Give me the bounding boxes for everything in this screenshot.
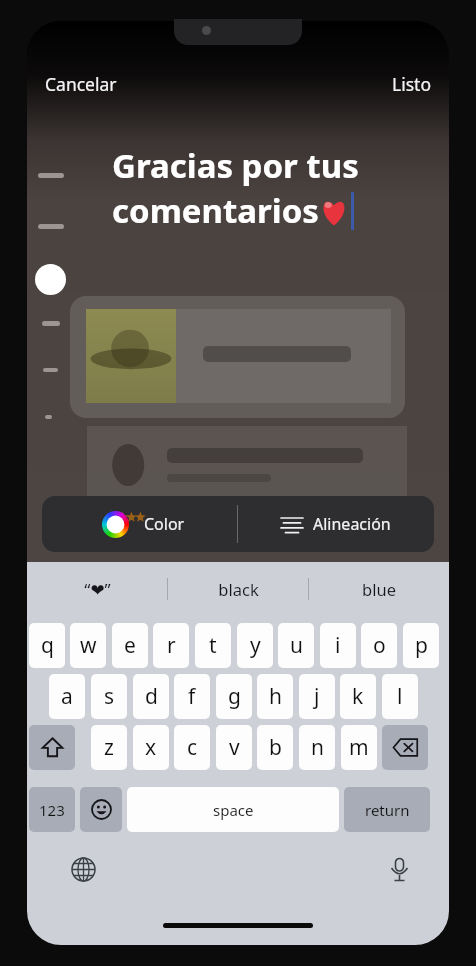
- button[interactable]: black: [168, 562, 308, 616]
- staticText: 123: [39, 800, 65, 820]
- staticText: black: [218, 578, 259, 600]
- staticText: f: [188, 682, 196, 711]
- button[interactable]: h: [257, 674, 293, 719]
- staticText: i: [335, 631, 341, 660]
- button[interactable]: o: [361, 623, 397, 668]
- staticText: Alineación: [313, 513, 391, 535]
- staticText: w: [80, 631, 97, 660]
- button[interactable]: s: [91, 674, 127, 719]
- staticText: j: [314, 682, 320, 711]
- staticText: r: [167, 631, 176, 660]
- button[interactable]: j: [299, 674, 335, 719]
- button[interactable]: Gracias por tus: [112, 143, 442, 233]
- button[interactable]: v: [216, 725, 252, 770]
- button[interactable]: blue: [309, 562, 449, 616]
- staticText: p: [415, 631, 428, 660]
- staticText: Cancelar: [45, 72, 117, 96]
- button[interactable]: Emoji: [80, 787, 122, 832]
- staticText: k: [352, 682, 364, 711]
- staticText: n: [311, 733, 324, 762]
- staticText: h: [269, 682, 282, 711]
- staticText: u: [290, 631, 303, 660]
- staticText: y: [250, 631, 261, 660]
- button[interactable]: c: [174, 725, 210, 770]
- button[interactable]: r: [153, 623, 189, 668]
- staticText: c: [187, 733, 198, 762]
- staticText: return: [365, 800, 410, 820]
- staticText: b: [269, 733, 282, 762]
- staticText: o: [373, 631, 386, 660]
- button[interactable]: z: [91, 725, 127, 770]
- button[interactable]: Text size: [35, 264, 66, 295]
- button[interactable]: x: [133, 725, 169, 770]
- staticText: q: [41, 631, 54, 660]
- button[interactable]: w: [70, 623, 106, 668]
- staticText: comentarios: [112, 188, 319, 233]
- staticText: space: [213, 800, 254, 820]
- button[interactable]: Backspace: [382, 725, 428, 770]
- staticText: v: [229, 733, 240, 762]
- button[interactable]: e: [112, 623, 148, 668]
- staticText: x: [145, 733, 157, 762]
- button[interactable]: k: [340, 674, 376, 719]
- staticText: l: [397, 682, 403, 711]
- button[interactable]: p: [403, 623, 439, 668]
- button[interactable]: b: [257, 725, 293, 770]
- button[interactable]: Change keyboard: [66, 852, 100, 886]
- button[interactable]: g: [216, 674, 252, 719]
- staticText: t: [209, 631, 217, 660]
- staticText: e: [124, 631, 136, 660]
- button[interactable]: f: [174, 674, 210, 719]
- button[interactable]: Alineación: [238, 496, 434, 552]
- button[interactable]: i: [320, 623, 356, 668]
- staticText: z: [104, 733, 114, 762]
- button[interactable]: a: [49, 674, 85, 719]
- staticText: blue: [362, 578, 396, 600]
- button[interactable]: Listo: [388, 69, 435, 99]
- staticText: d: [145, 682, 158, 711]
- staticText: m: [349, 733, 369, 762]
- button[interactable]: m: [341, 725, 377, 770]
- button[interactable]: space: [127, 787, 339, 832]
- button[interactable]: t: [195, 623, 231, 668]
- staticText: Listo: [392, 72, 431, 96]
- button[interactable]: Dictate: [382, 852, 416, 886]
- button[interactable]: Color: [42, 496, 237, 552]
- button[interactable]: 123: [29, 787, 75, 832]
- staticText: s: [104, 682, 115, 711]
- staticText: Gracias por tus: [112, 143, 359, 188]
- button[interactable]: n: [299, 725, 335, 770]
- button[interactable]: u: [278, 623, 314, 668]
- button[interactable]: return: [344, 787, 430, 832]
- staticText: Color: [144, 513, 185, 535]
- button[interactable]: Shift: [29, 725, 75, 770]
- button[interactable]: “❤️”: [27, 562, 167, 616]
- staticText: “❤️”: [84, 578, 111, 601]
- staticText: a: [61, 682, 73, 711]
- button[interactable]: l: [382, 674, 418, 719]
- button[interactable]: d: [133, 674, 169, 719]
- button[interactable]: y: [237, 623, 273, 668]
- button[interactable]: q: [29, 623, 65, 668]
- button[interactable]: Cancelar: [41, 69, 121, 99]
- staticText: g: [228, 682, 241, 711]
